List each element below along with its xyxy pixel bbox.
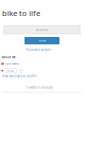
staticText: No posts. [35,28,48,32]
button[interactable]: halle reverse [1,62,19,65]
staticText: bike to life [2,7,40,18]
button[interactable]: View my complete profile [2,74,37,78]
staticText: Home [38,39,45,42]
staticText: View my complete profile [2,74,37,78]
staticText: . [52,86,53,89]
staticText: Powered by [25,86,41,89]
button[interactable]: Blogger [41,86,52,89]
staticText: About me [2,55,16,59]
staticText: Blogger [41,86,52,89]
button[interactable]: View web version [0,47,77,51]
staticText: View web version [26,47,51,51]
staticText: halle reverse [5,62,19,65]
staticText: Follow [7,69,14,72]
button[interactable]: Follow [5,68,16,73]
button[interactable]: Follower count [20,69,23,72]
button[interactable]: Home [25,38,59,44]
